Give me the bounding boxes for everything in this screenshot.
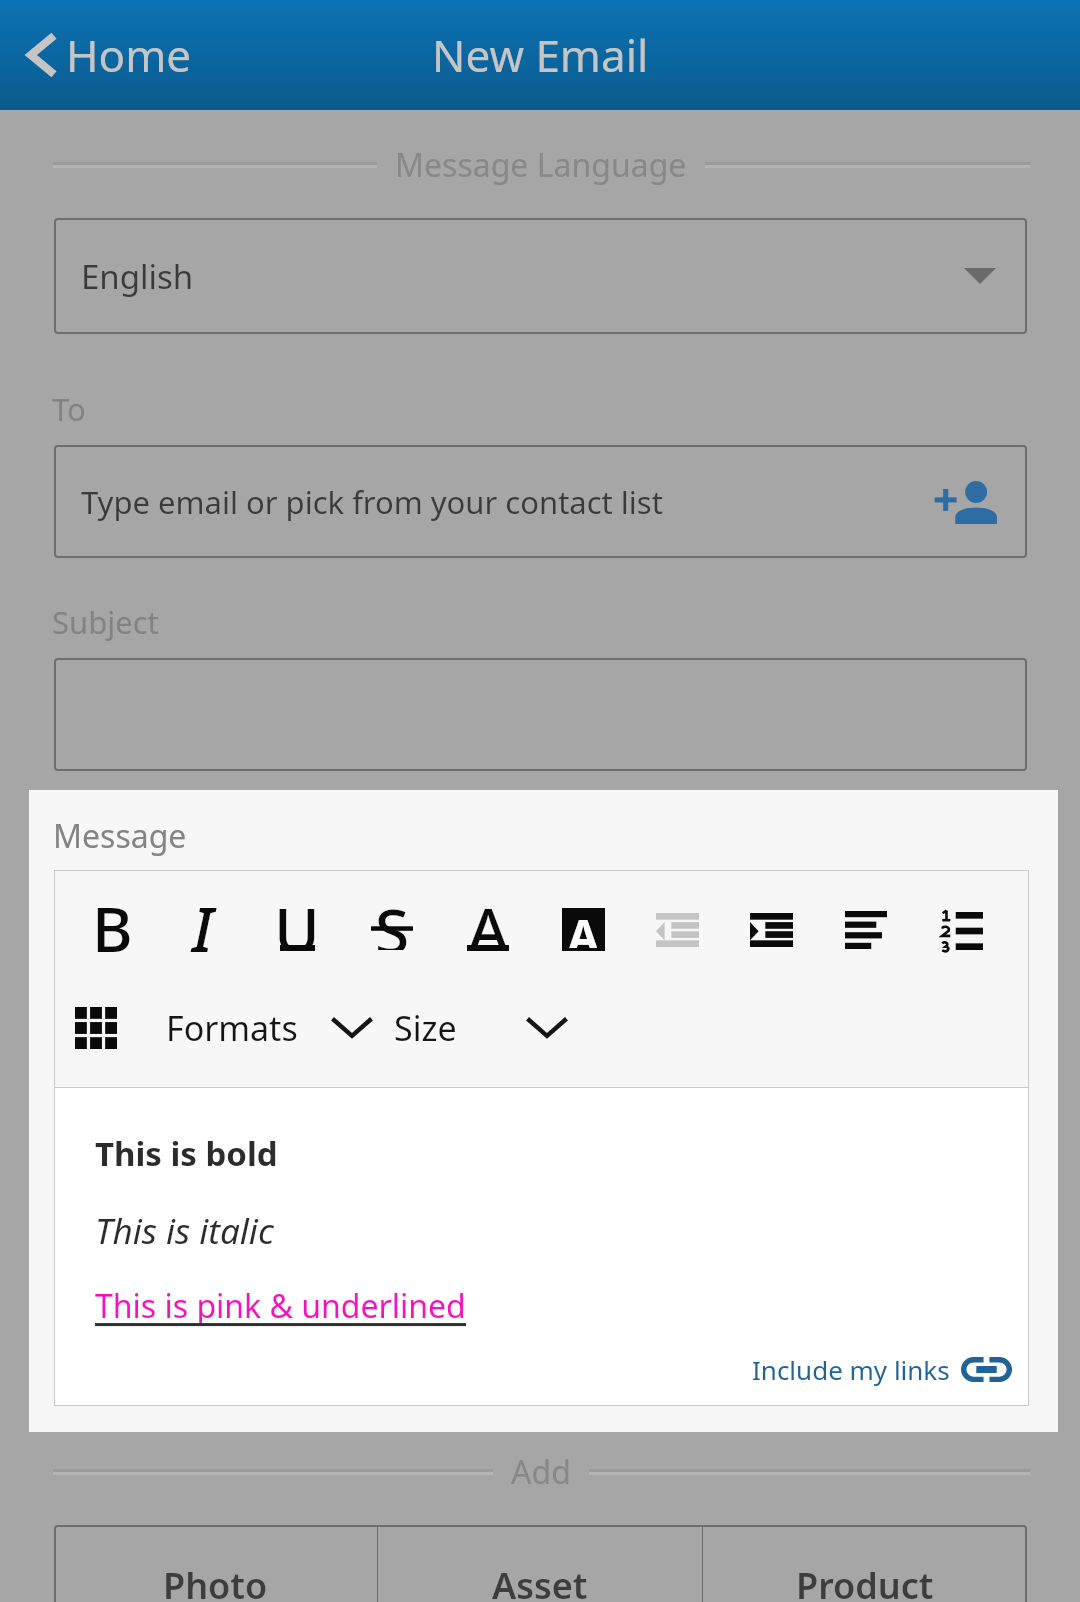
staticText: This is italic [95, 1207, 274, 1255]
staticText: This is bold [95, 1131, 278, 1176]
button[interactable]: Bold [70, 884, 154, 980]
button[interactable]: Italic [161, 884, 245, 980]
staticText: Type email or pick from your contact lis… [81, 481, 663, 523]
button[interactable]: Increase indent [729, 884, 813, 980]
staticText: S [375, 888, 410, 950]
staticText: English [81, 254, 194, 299]
button[interactable]: English [54, 218, 1027, 334]
staticText: Formats [166, 1005, 298, 1051]
button[interactable]: Highlight colour [541, 884, 625, 980]
button[interactable]: Photo [54, 1525, 377, 1602]
staticText: To [52, 388, 86, 430]
staticText: Message Language [395, 143, 687, 187]
button[interactable]: Strikethrough [350, 884, 434, 980]
staticText: Size [394, 1005, 457, 1051]
staticText: Asset [492, 1561, 588, 1602]
staticText: New Email [432, 25, 649, 85]
staticText: Message [53, 814, 187, 858]
staticText: Photo [163, 1561, 268, 1602]
staticText: Add [511, 1450, 571, 1494]
staticText: Product [796, 1561, 934, 1602]
button[interactable]: Decrease indent [635, 884, 719, 980]
staticText: Subject [52, 601, 159, 643]
staticText: U [274, 887, 320, 949]
button[interactable]: Align left [824, 884, 908, 980]
button[interactable]: Include my links [752, 1352, 1012, 1387]
button[interactable]: Formats [166, 980, 372, 1076]
staticText: Include my links [752, 1352, 950, 1387]
button[interactable]: Size [394, 980, 567, 1076]
button[interactable]: Text colour [446, 884, 530, 980]
staticText: I [192, 886, 214, 970]
button[interactable]: Asset [378, 1525, 702, 1602]
button[interactable]: Home [22, 25, 192, 85]
staticText: Home [66, 25, 192, 85]
staticText: A [468, 887, 509, 949]
staticText: B [92, 886, 133, 970]
button[interactable]: Numbered list [919, 884, 1003, 980]
staticText: A [568, 905, 599, 948]
button[interactable]: Insert table [51, 980, 141, 1076]
staticText: This is pink & underlined [95, 1284, 466, 1328]
button[interactable]: Underline [255, 884, 339, 980]
button[interactable]: Product [703, 1525, 1027, 1602]
button[interactable]: Add contact [935, 469, 1001, 535]
